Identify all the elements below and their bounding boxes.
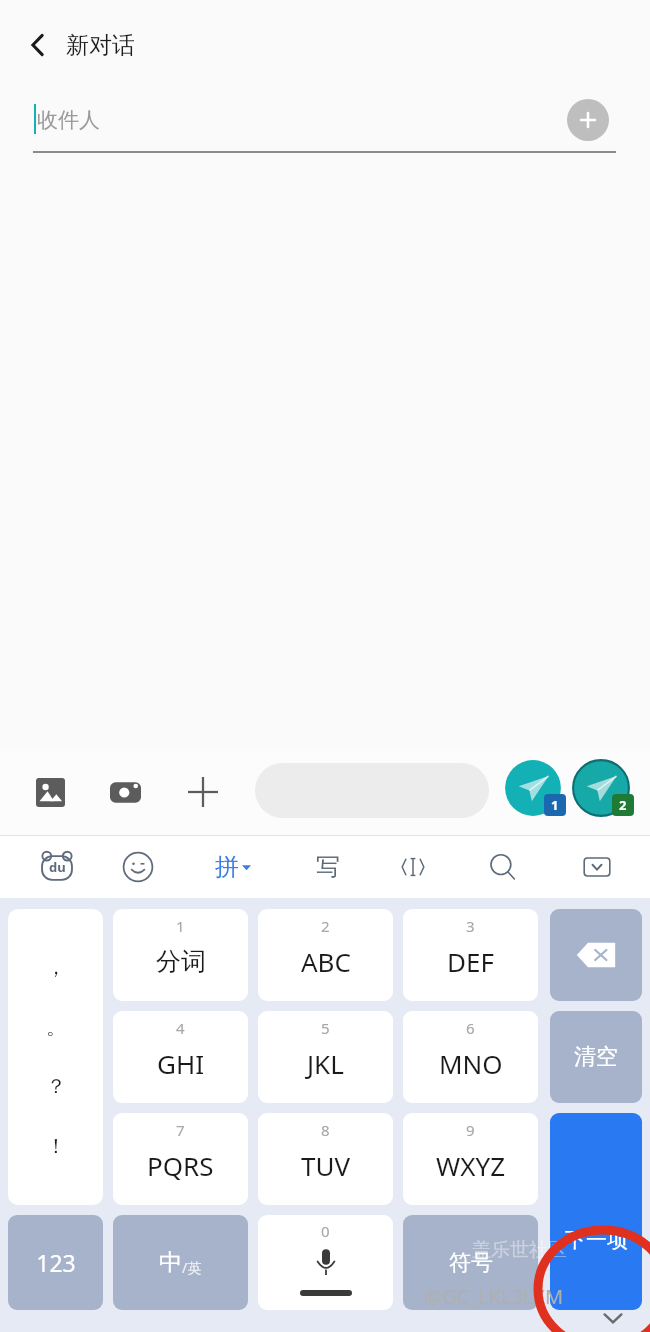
button[interactable]: Camera	[103, 770, 147, 814]
staticText: 0	[321, 1221, 330, 1241]
staticText: 123	[36, 1247, 76, 1278]
button[interactable]: Backspace	[550, 909, 642, 1001]
button[interactable]: 123	[8, 1215, 103, 1310]
button[interactable]: 8	[258, 1113, 393, 1205]
staticText: 5	[321, 1018, 330, 1038]
other: Space	[258, 1215, 393, 1310]
button[interactable]: Hide keyboard	[572, 844, 622, 890]
staticText: 下一项	[565, 1227, 628, 1253]
other: Backspace	[550, 909, 642, 1001]
button[interactable]: Back	[10, 17, 66, 73]
staticText: 盖乐世社区	[472, 1238, 567, 1262]
button[interactable]: 清空	[550, 1011, 642, 1103]
button[interactable]: Search	[478, 844, 528, 890]
button[interactable]	[255, 763, 489, 818]
button[interactable]: Move cursor	[388, 844, 438, 890]
button[interactable]: 6	[403, 1011, 538, 1103]
staticText: 4	[176, 1018, 185, 1038]
staticText: 2	[619, 796, 627, 814]
button[interactable]: ，	[8, 909, 103, 1205]
button[interactable]: 1	[113, 909, 248, 1001]
staticText: ？	[46, 1074, 66, 1099]
button[interactable]: 9	[403, 1113, 538, 1205]
staticText: MNO	[439, 1046, 503, 1081]
staticText: 。	[46, 1015, 66, 1040]
button[interactable]: Send SIM 1	[503, 758, 563, 818]
staticText: 符号	[449, 1249, 493, 1277]
staticText: 中	[159, 1248, 182, 1277]
staticText: 拼	[215, 852, 239, 882]
button[interactable]: 符号	[403, 1215, 538, 1310]
staticText: 8	[321, 1120, 330, 1140]
button[interactable]: 2	[258, 909, 393, 1001]
staticText: JKL	[307, 1046, 344, 1081]
staticText: du	[49, 858, 66, 876]
staticText: 2	[321, 916, 330, 936]
staticText: ABC	[301, 944, 351, 979]
staticText: ，	[46, 955, 66, 980]
button[interactable]: Send SIM 2	[571, 758, 631, 818]
staticText: 9	[466, 1120, 475, 1140]
staticText: 分词	[156, 946, 206, 977]
button[interactable]: Add recipient	[567, 99, 609, 141]
button[interactable]: Hide	[595, 1300, 631, 1332]
staticText: 1	[551, 796, 559, 814]
button[interactable]: 5	[258, 1011, 393, 1103]
button[interactable]: 写	[300, 844, 356, 890]
button[interactable]: 7	[113, 1113, 248, 1205]
button[interactable]: Baidu input	[32, 844, 82, 890]
button[interactable]: 拼	[200, 844, 266, 890]
staticText: 3	[466, 916, 475, 936]
button[interactable]: More options	[181, 770, 225, 814]
staticText: TUV	[301, 1148, 351, 1183]
staticText: 新对话	[66, 31, 135, 60]
staticText: GHI	[157, 1046, 205, 1081]
staticText: /英	[182, 1258, 202, 1277]
staticText: 写	[316, 852, 340, 882]
button[interactable]: 下一项	[550, 1113, 642, 1310]
staticText: ！	[46, 1134, 66, 1159]
staticText: 1	[176, 916, 185, 936]
staticText: 清空	[574, 1043, 618, 1071]
staticText: PQRS	[147, 1148, 214, 1183]
staticText: 6	[466, 1018, 475, 1038]
staticText: DEF	[447, 944, 494, 979]
staticText: WXYZ	[436, 1148, 506, 1183]
button[interactable]: 3	[403, 909, 538, 1001]
staticText: 收件人	[37, 107, 100, 133]
button[interactable]: Emoji	[113, 844, 163, 890]
button[interactable]: Gallery	[28, 770, 72, 814]
staticText: @GC_LKL3LXM	[424, 1283, 564, 1310]
button[interactable]: 中	[113, 1215, 248, 1310]
button[interactable]: 4	[113, 1011, 248, 1103]
button[interactable]: Space	[258, 1215, 393, 1310]
staticText: 7	[176, 1120, 185, 1140]
